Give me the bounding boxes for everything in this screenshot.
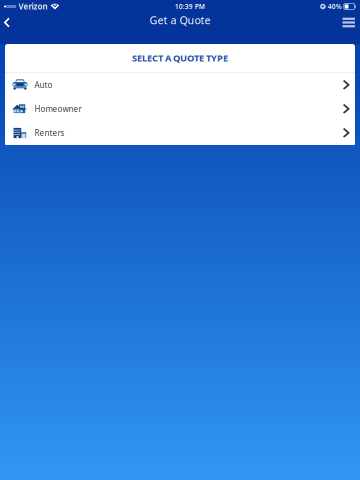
staticText: 40% [328,2,342,11]
button[interactable]: Renters [5,121,355,145]
staticText: SELECT A QUOTE TYPE [132,52,228,64]
button[interactable]: Auto [5,73,355,97]
staticText: 10:39 PM [175,2,205,11]
button[interactable]: Homeowner [5,97,355,121]
staticText: Renters [34,127,64,138]
button[interactable]: Back [0,13,22,31]
button[interactable]: Menu [330,14,360,30]
staticText: Get a Quote [149,13,210,27]
staticText: Verizon [18,1,47,12]
staticText: Homeowner [34,103,81,114]
staticText: Auto [34,79,52,90]
